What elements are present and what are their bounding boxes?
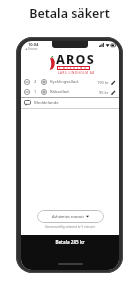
staticText: Räksallad.	[50, 89, 70, 95]
button[interactable]: 1	[21, 87, 119, 97]
staticText: 10:04	[28, 42, 39, 47]
button[interactable]: 2	[21, 77, 119, 87]
button[interactable]: Betala 285 kr	[21, 235, 119, 270]
staticText: LARS LINDHOLM AB	[58, 71, 95, 75]
staticText: 190 kr	[97, 80, 109, 85]
staticText: Meddelande	[34, 100, 59, 106]
staticText: 95 kr	[99, 90, 109, 95]
staticText: 2	[34, 79, 37, 85]
staticText: 1	[34, 89, 37, 95]
staticText: Avhämtas snarast	[52, 214, 84, 219]
staticText: Kycklingsallad.	[50, 79, 79, 85]
staticText: Betala 285 kr	[21, 239, 119, 245]
staticText: ◀ Browse	[25, 47, 38, 51]
staticText: CATERING	[59, 66, 88, 70]
staticText: AROS	[56, 51, 95, 68]
button[interactable]: Avhämtas snarast	[37, 210, 104, 223]
button[interactable]: Meddelande	[21, 98, 119, 108]
staticText: Genomsnittlig väntetid är 5 minuter	[21, 225, 119, 229]
staticText: Betala säkert	[0, 5, 139, 22]
